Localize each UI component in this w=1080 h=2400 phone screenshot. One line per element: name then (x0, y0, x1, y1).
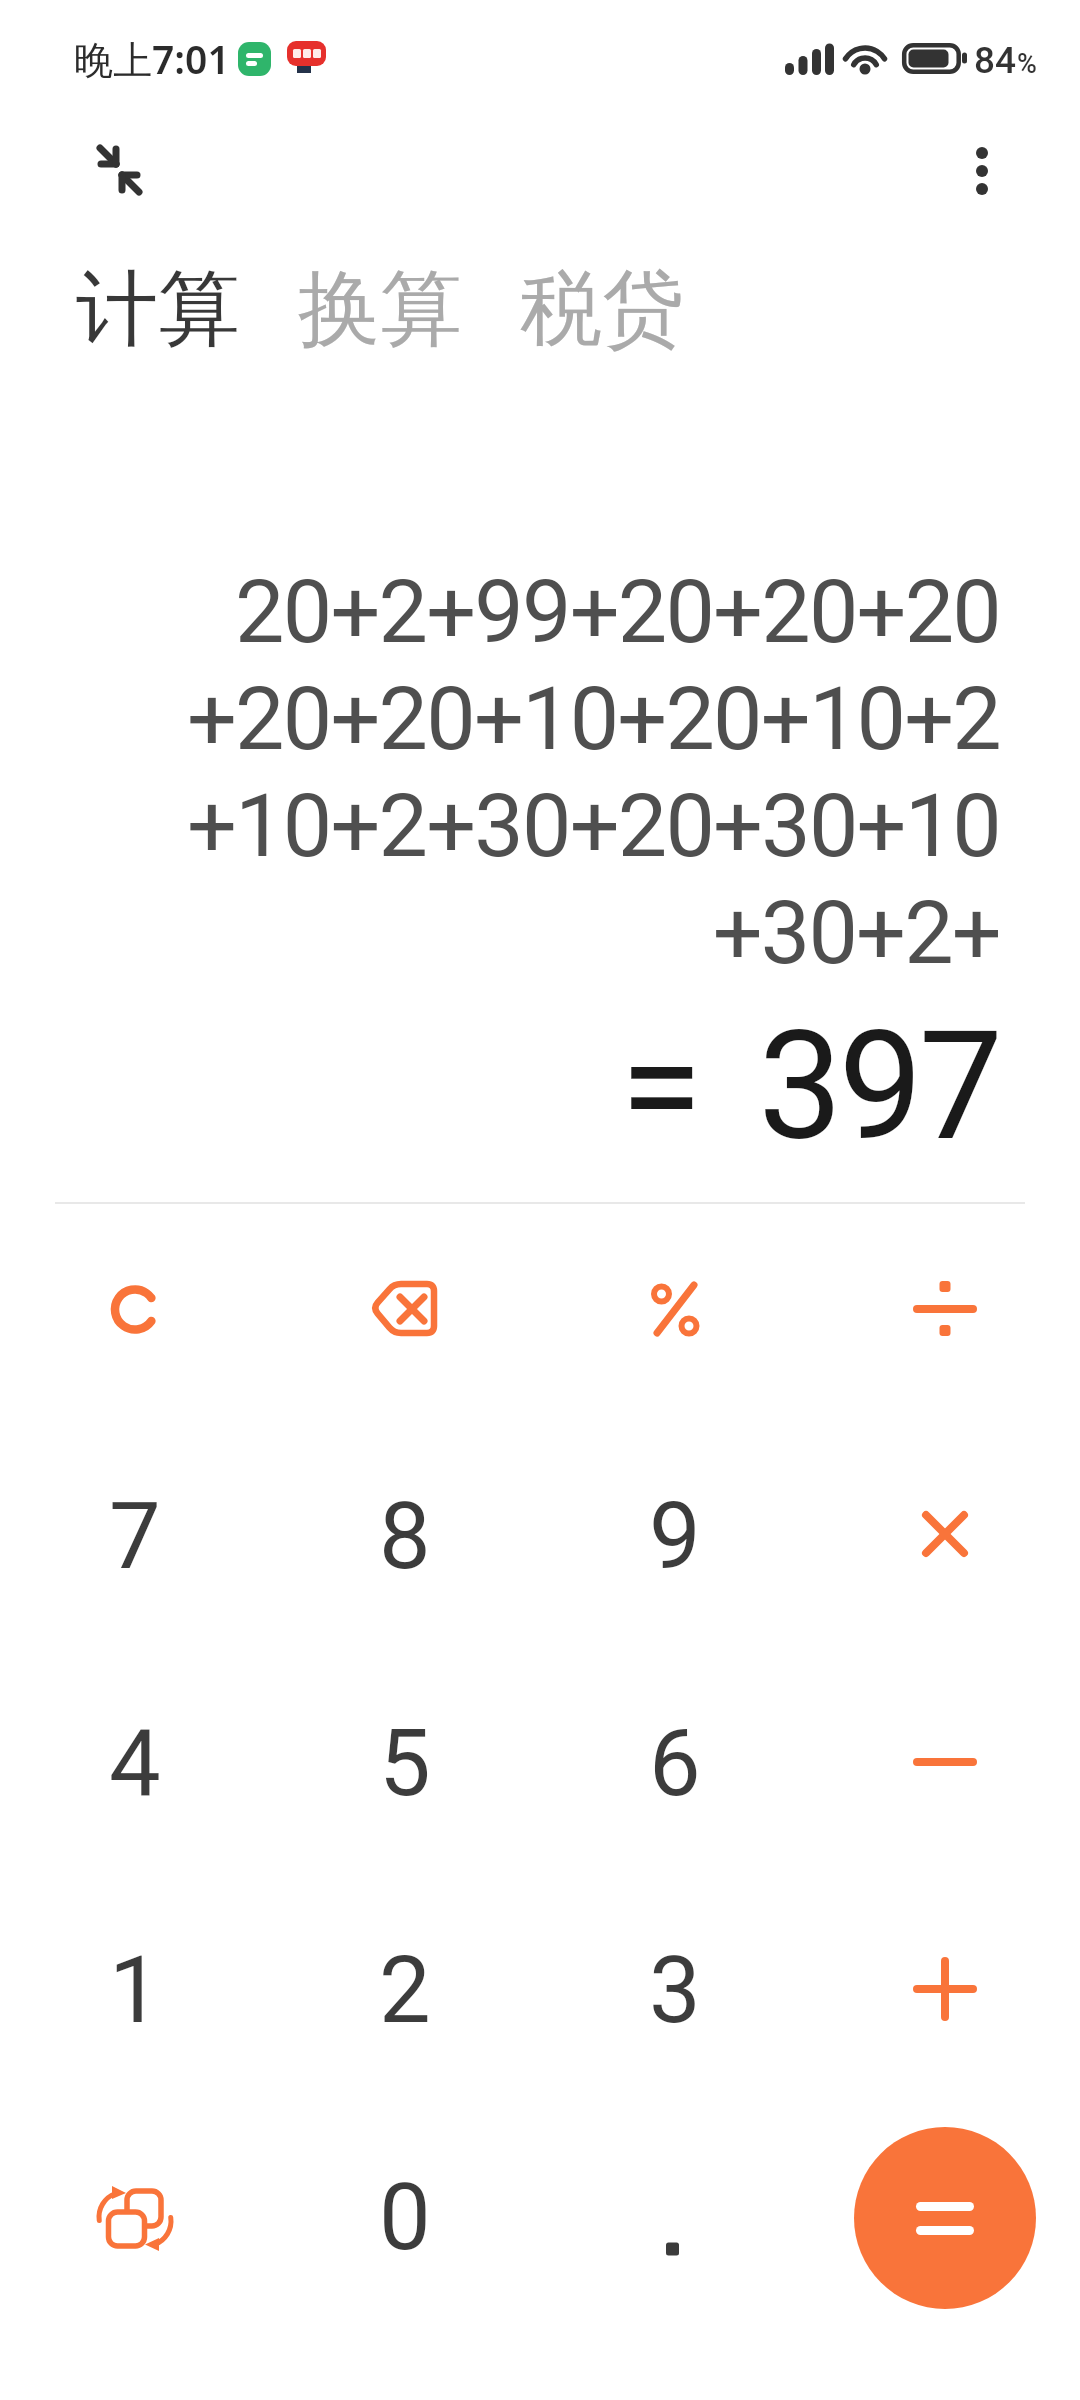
button[interactable] (865, 1230, 1025, 1390)
staticText: 8 (379, 1483, 431, 1591)
staticText: % (1017, 48, 1037, 80)
button[interactable]: 8 (325, 1457, 485, 1617)
button[interactable] (865, 1911, 1025, 2071)
staticText: 0 (379, 2164, 431, 2272)
button[interactable]: 4 (55, 1684, 215, 1844)
button[interactable]: 7 (55, 1457, 215, 1617)
staticText: 晚上7:01 (74, 32, 230, 85)
button[interactable] (854, 2127, 1036, 2309)
button[interactable]: 1 (55, 1911, 215, 2071)
button[interactable] (595, 1230, 755, 1390)
staticText: 7 (109, 1483, 161, 1591)
button[interactable]: 换算 (298, 258, 462, 361)
staticText: 3 (649, 1937, 701, 2045)
button[interactable]: 5 (325, 1684, 485, 1844)
button[interactable]: 计算 (76, 258, 240, 361)
button[interactable]: 0 (325, 2138, 485, 2298)
staticText: 2 (379, 1937, 431, 2045)
button[interactable]: 9 (595, 1457, 755, 1617)
staticText: 9 (649, 1483, 701, 1591)
button[interactable] (325, 1230, 485, 1390)
button[interactable]: 3 (595, 1911, 755, 2071)
button[interactable] (55, 2138, 215, 2298)
button[interactable] (958, 135, 1006, 205)
staticText: 6 (649, 1710, 701, 1818)
staticText: 5 (379, 1710, 431, 1818)
staticText: 4 (109, 1710, 161, 1818)
button[interactable]: 2 (325, 1911, 485, 2071)
staticText: 84 (974, 39, 1017, 82)
staticText: 1 (109, 1937, 161, 2045)
staticText: = 397 (620, 999, 1000, 1175)
button[interactable] (865, 1457, 1025, 1617)
button[interactable]: 税贷 (520, 258, 684, 361)
button[interactable] (55, 1230, 215, 1390)
button[interactable] (595, 2138, 755, 2298)
button[interactable] (88, 135, 152, 205)
button[interactable] (865, 1684, 1025, 1844)
button[interactable]: 6 (595, 1684, 755, 1844)
staticText: 20+2+99+20+20+20 +20+20+10+20+10+2 +10+2… (186, 560, 1000, 984)
